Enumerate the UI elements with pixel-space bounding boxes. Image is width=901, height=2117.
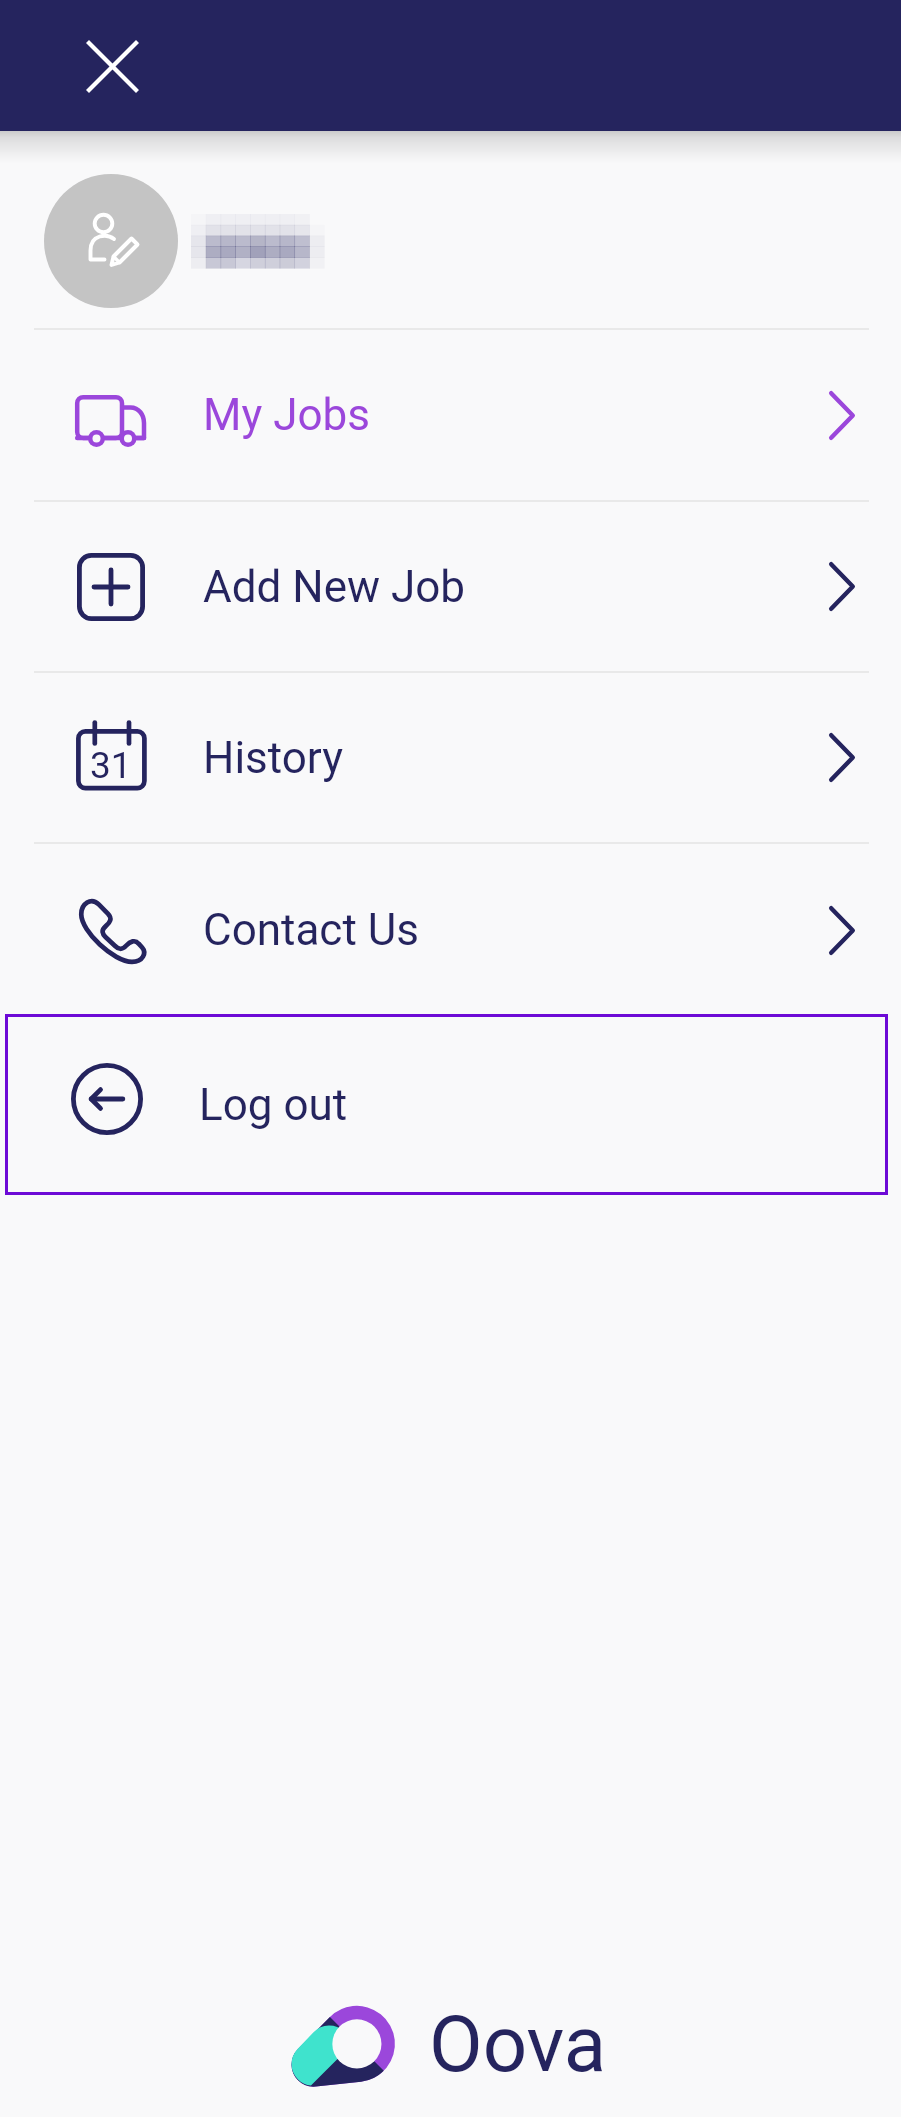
button[interactable]: Log out [5, 1014, 888, 1195]
button[interactable] [0, 142, 901, 339]
button[interactable]: Add New Job [0, 502, 901, 671]
staticText: My Jobs [203, 389, 370, 441]
staticText: Add New Job [203, 561, 466, 613]
staticText: Contact Us [203, 904, 419, 956]
button[interactable]: 31 [0, 673, 901, 842]
staticText: History [203, 732, 343, 784]
button[interactable]: My Jobs [0, 330, 901, 500]
button[interactable]: Contact Us [0, 844, 901, 1016]
staticText: Oova [429, 1999, 607, 2090]
staticText: Log out [199, 1079, 348, 1131]
button[interactable]: Close [64, 18, 160, 114]
staticText: 31 [90, 744, 132, 787]
